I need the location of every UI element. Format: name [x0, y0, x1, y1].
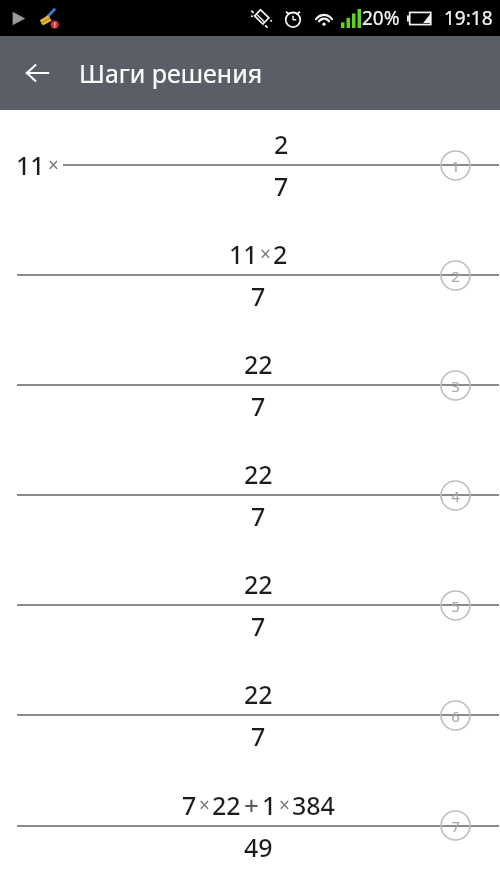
staticText: Шаги решения [79, 56, 263, 90]
staticText: 2 [451, 266, 460, 286]
staticText: + [244, 787, 259, 822]
button[interactable]: 22 [0, 440, 500, 550]
button[interactable]: 22 [0, 330, 500, 440]
staticText: 22 [244, 347, 273, 381]
staticText: 22 [212, 788, 241, 822]
button[interactable]: 22 [0, 660, 500, 770]
staticText: 11 [16, 148, 45, 182]
staticText: 22 [244, 457, 273, 491]
staticText: 1 [262, 788, 277, 822]
staticText: 7 [251, 279, 266, 313]
staticText: × [199, 792, 210, 818]
staticText: 5 [451, 596, 460, 616]
staticText: 49 [244, 830, 273, 864]
staticText: × [260, 241, 271, 267]
staticText: 4 [451, 486, 460, 506]
staticText: 7 [182, 788, 197, 822]
staticText: 7 [251, 389, 266, 423]
staticText: 3 [451, 376, 460, 396]
staticText: 1 [451, 156, 460, 176]
staticText: 19:18 [444, 5, 493, 31]
staticText: 2 [274, 127, 289, 161]
staticText: × [48, 152, 59, 178]
staticText: 7 [274, 169, 289, 203]
staticText: 6 [451, 706, 460, 726]
staticText: 384 [292, 788, 335, 822]
staticText: 22 [244, 567, 273, 601]
staticText: 7 [251, 719, 266, 753]
button[interactable]: 11 [0, 220, 500, 330]
button[interactable]: 22 [0, 550, 500, 660]
staticText: 7 [251, 609, 266, 643]
staticText: 7 [251, 499, 266, 533]
staticText: 22 [244, 677, 273, 711]
button[interactable]: Назад [14, 50, 60, 96]
staticText: 20% [362, 5, 400, 31]
staticText: 11 [229, 237, 258, 271]
button[interactable]: 7 [0, 770, 500, 880]
staticText: × [279, 792, 290, 818]
button[interactable]: 11 [0, 110, 500, 220]
staticText: 7 [451, 816, 460, 836]
staticText: 2 [273, 237, 288, 271]
